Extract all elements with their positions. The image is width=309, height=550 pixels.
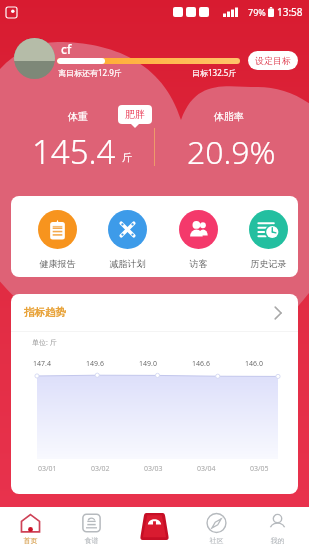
staticText: 食谱: [61, 536, 122, 545]
staticText: 20.9%: [187, 130, 276, 174]
staticText: 149.0: [139, 359, 157, 369]
staticText: 03/03: [144, 464, 163, 474]
staticText: 访客: [165, 258, 232, 269]
button[interactable]: 食谱: [61, 513, 122, 545]
staticText: 肥胖: [125, 108, 145, 121]
staticText: 03/04: [197, 464, 216, 474]
button[interactable]: 首页: [0, 513, 61, 545]
staticText: 03/02: [91, 464, 110, 474]
staticText: 03/01: [38, 464, 57, 474]
staticText: 目标132.5斤: [192, 67, 237, 78]
staticText: 离目标还有12.9斤: [58, 67, 122, 78]
staticText: 社区: [186, 536, 247, 545]
staticText: 我的: [247, 536, 308, 545]
button[interactable]: 指标趋势: [11, 294, 298, 331]
staticText: 13:58: [277, 5, 303, 19]
button[interactable]: 社区: [186, 513, 247, 545]
staticText: 设定目标: [255, 55, 291, 66]
staticText: 斤: [122, 151, 132, 164]
button[interactable]: 设定目标: [248, 51, 298, 70]
staticText: 147.4: [33, 359, 51, 369]
staticText: 指标趋势: [24, 306, 66, 319]
staticText: 149.6: [86, 359, 104, 369]
staticText: 03/05: [250, 464, 269, 474]
button[interactable]: 访客: [165, 210, 232, 269]
button[interactable]: 健康报告: [24, 210, 91, 269]
staticText: 145.4: [32, 129, 116, 174]
staticText: cf: [61, 41, 72, 57]
button[interactable]: 历史记录: [235, 210, 298, 269]
button[interactable]: 我的: [247, 513, 308, 545]
staticText: 单位: 斤: [32, 338, 57, 348]
staticText: 健康报告: [24, 258, 91, 269]
button[interactable]: 称重: [134, 506, 174, 546]
staticText: 146.6: [192, 359, 210, 369]
staticText: 146.0: [245, 359, 263, 369]
staticText: 体脂率: [214, 110, 244, 123]
button[interactable]: 减脂计划: [94, 210, 161, 269]
staticText: 减脂计划: [94, 258, 161, 269]
staticText: 历史记录: [235, 258, 298, 269]
staticText: 首页: [0, 536, 61, 545]
staticText: 79%: [248, 6, 266, 18]
staticText: 体重: [68, 110, 88, 123]
